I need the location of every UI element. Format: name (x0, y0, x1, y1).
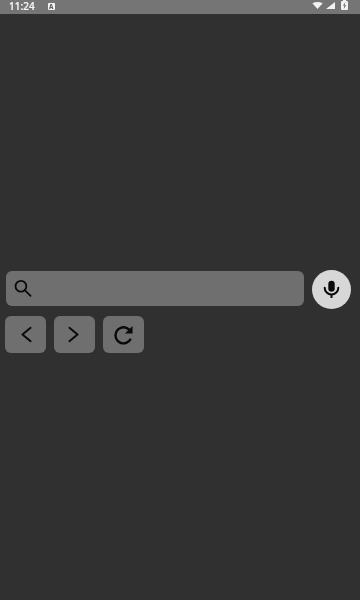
button[interactable]: Back (5, 316, 46, 353)
staticText: 11:24 (9, 0, 35, 13)
button[interactable]: Forward (54, 316, 95, 353)
button[interactable]: Voice search (312, 270, 351, 309)
button[interactable]: Reload (103, 316, 144, 353)
staticText: A (49, 3, 54, 10)
button[interactable]: Search or type URL (6, 271, 304, 306)
